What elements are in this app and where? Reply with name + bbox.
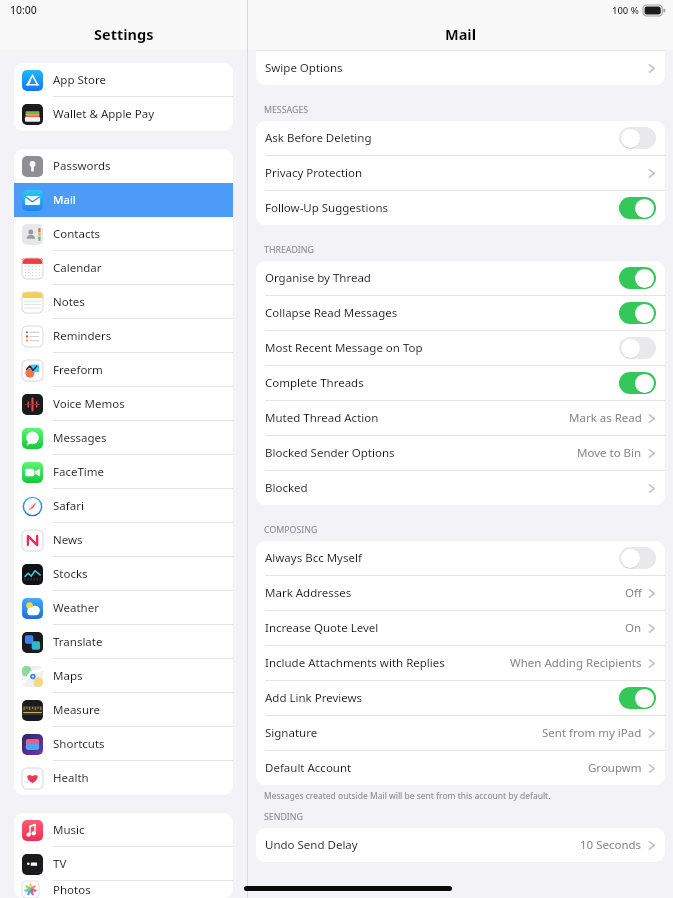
staticText: Off: [625, 585, 642, 601]
staticText: Passwords: [53, 158, 111, 174]
staticText: Privacy Protection: [265, 165, 363, 181]
staticText: 10 Seconds: [580, 837, 642, 853]
staticText: Swipe Options: [265, 60, 343, 76]
button[interactable]: Messages: [14, 421, 233, 455]
staticText: Always Bcc Myself: [265, 550, 362, 566]
button[interactable]: Include Attachments with Replies: [256, 646, 665, 680]
button[interactable]: On: [619, 687, 656, 709]
staticText: Voice Memos: [53, 396, 125, 412]
button[interactable]: Signature: [256, 716, 665, 750]
button[interactable]: FaceTime: [14, 455, 233, 489]
button[interactable]: Weather: [14, 591, 233, 625]
staticText: Muted Thread Action: [265, 410, 379, 426]
button[interactable]: App Store: [14, 63, 233, 97]
button[interactable]: On: [619, 197, 656, 219]
staticText: When Adding Recipients: [510, 655, 642, 671]
button[interactable]: Blocked: [256, 471, 665, 505]
button[interactable]: Off: [619, 127, 656, 149]
button[interactable]: Swipe Options: [256, 51, 665, 85]
button[interactable]: Notes: [14, 285, 233, 319]
button[interactable]: On: [619, 267, 656, 289]
staticText: TV: [53, 856, 67, 872]
button[interactable]: Reminders: [14, 319, 233, 353]
staticText: Measure: [53, 702, 100, 718]
button[interactable]: Translate: [14, 625, 233, 659]
staticText: Blocked: [265, 480, 308, 496]
button[interactable]: Undo Send Delay: [256, 828, 665, 862]
staticText: Wallet & Apple Pay: [53, 106, 155, 122]
staticText: Groupwm: [588, 760, 642, 776]
staticText: Maps: [53, 668, 83, 684]
button[interactable]: Safari: [14, 489, 233, 523]
button[interactable]: Music: [14, 813, 233, 847]
staticText: On: [625, 620, 642, 636]
staticText: Calendar: [53, 260, 102, 276]
button[interactable]: Photos: [14, 881, 233, 898]
button[interactable]: On: [619, 372, 656, 394]
staticText: THREADING: [264, 244, 314, 256]
staticText: Freeform: [53, 362, 103, 378]
staticText: Stocks: [53, 566, 88, 582]
staticText: SENDING: [264, 811, 303, 823]
button[interactable]: Blocked Sender Options: [256, 436, 665, 470]
staticText: Signature: [265, 725, 318, 741]
staticText: Settings: [94, 24, 154, 44]
staticText: Include Attachments with Replies: [265, 655, 445, 671]
button[interactable]: Off: [619, 337, 656, 359]
staticText: FaceTime: [53, 464, 105, 480]
button[interactable]: Mail: [14, 183, 233, 217]
button[interactable]: Contacts: [14, 217, 233, 251]
button[interactable]: Shortcuts: [14, 727, 233, 761]
staticText: Messages created outside Mail will be se…: [264, 790, 551, 802]
staticText: Follow-Up Suggestions: [265, 200, 389, 216]
staticText: Music: [53, 822, 85, 838]
button[interactable]: Health: [14, 761, 233, 795]
staticText: COMPOSING: [264, 524, 318, 536]
button[interactable]: News: [14, 523, 233, 557]
staticText: App Store: [53, 72, 106, 88]
staticText: Move to Bin: [577, 445, 642, 461]
staticText: Sent from my iPad: [542, 725, 642, 741]
button[interactable]: Off: [619, 547, 656, 569]
button[interactable]: Default Account: [256, 751, 665, 785]
staticText: Add Link Previews: [265, 690, 363, 706]
staticText: Weather: [53, 600, 99, 616]
staticText: MESSAGES: [264, 104, 309, 116]
button[interactable]: Mark Addresses: [256, 576, 665, 610]
staticText: Increase Quote Level: [265, 620, 379, 636]
staticText: 100 %: [612, 4, 639, 17]
staticText: Organise by Thread: [265, 270, 371, 286]
staticText: Blocked Sender Options: [265, 445, 395, 461]
button[interactable]: Ask Before Deleting: [256, 121, 665, 155]
staticText: Default Account: [265, 760, 352, 776]
staticText: Photos: [53, 882, 91, 898]
button[interactable]: Follow-Up Suggestions: [256, 191, 665, 225]
button[interactable]: Muted Thread Action: [256, 401, 665, 435]
button[interactable]: On: [619, 302, 656, 324]
staticText: Mark as Read: [569, 410, 642, 426]
button[interactable]: Passwords: [14, 149, 233, 183]
button[interactable]: TV: [14, 847, 233, 881]
button[interactable]: Collapse Read Messages: [256, 296, 665, 330]
button[interactable]: Most Recent Message on Top: [256, 331, 665, 365]
staticText: Complete Threads: [265, 375, 364, 391]
button[interactable]: Privacy Protection: [256, 156, 665, 190]
button[interactable]: Voice Memos: [14, 387, 233, 421]
button[interactable]: Increase Quote Level: [256, 611, 665, 645]
button[interactable]: Complete Threads: [256, 366, 665, 400]
button[interactable]: Freeform: [14, 353, 233, 387]
staticText: Safari: [53, 498, 84, 514]
button[interactable]: Maps: [14, 659, 233, 693]
staticText: Messages: [53, 430, 107, 446]
button[interactable]: Measure: [14, 693, 233, 727]
button[interactable]: Calendar: [14, 251, 233, 285]
button[interactable]: Wallet & Apple Pay: [14, 97, 233, 131]
staticText: 10:00: [10, 3, 37, 17]
staticText: Reminders: [53, 328, 112, 344]
button[interactable]: Always Bcc Myself: [256, 541, 665, 575]
button[interactable]: Organise by Thread: [256, 261, 665, 295]
button[interactable]: Add Link Previews: [256, 681, 665, 715]
staticText: Contacts: [53, 226, 101, 242]
button[interactable]: Stocks: [14, 557, 233, 591]
staticText: Shortcuts: [53, 736, 105, 752]
